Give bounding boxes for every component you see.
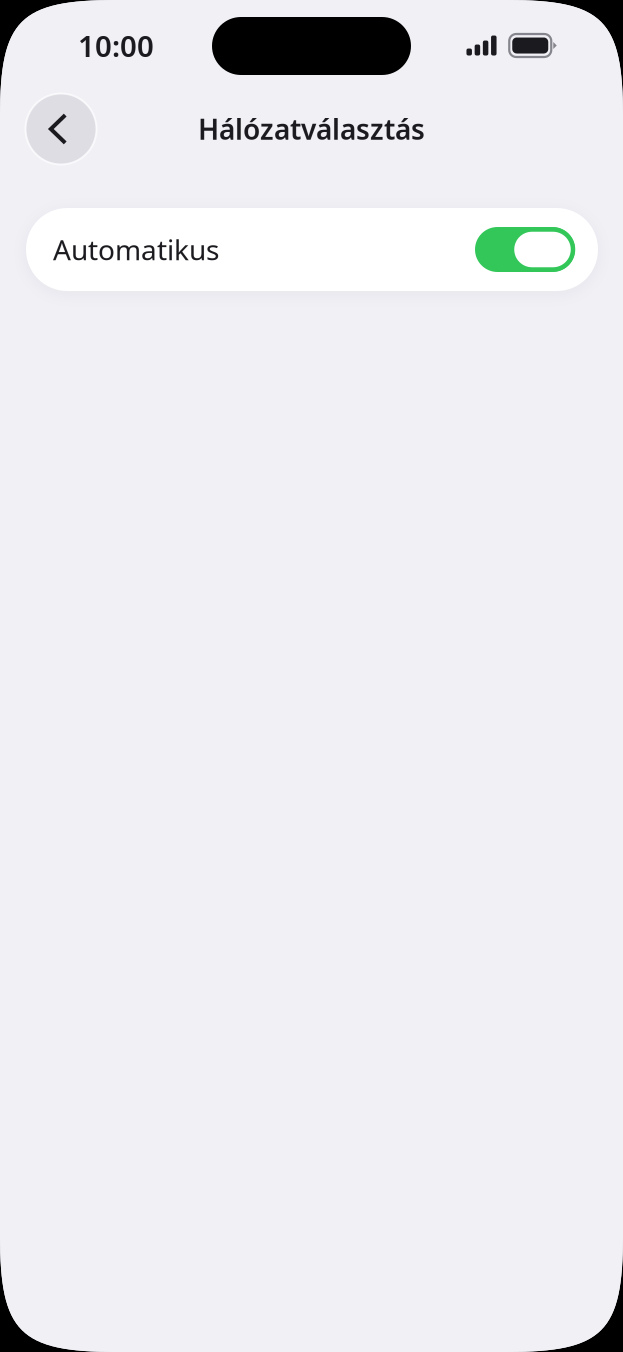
button[interactable]: Automatikus [475,227,575,272]
button[interactable]: Automatikus [26,208,598,291]
staticText: 10:00 [78,26,154,65]
staticText: Automatikus [53,231,219,268]
staticText: Hálózatválasztás [198,110,425,148]
button[interactable]: Back [26,94,96,164]
